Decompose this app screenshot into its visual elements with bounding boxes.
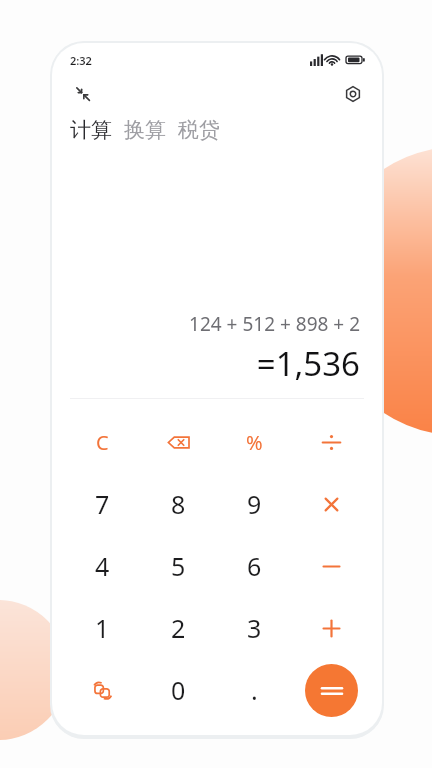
button[interactable]: 7 bbox=[64, 473, 140, 535]
button[interactable]: 计算 bbox=[70, 117, 118, 143]
staticText: 2:32 bbox=[70, 53, 92, 68]
staticText: =1,536 bbox=[70, 341, 360, 386]
staticText: 换算 bbox=[124, 117, 166, 143]
staticText: 8 bbox=[171, 487, 186, 521]
button[interactable]: Equals bbox=[305, 664, 358, 717]
button[interactable]: 5 bbox=[140, 535, 216, 597]
button[interactable]: 2 bbox=[140, 597, 216, 659]
button[interactable]: % bbox=[216, 411, 293, 473]
staticText: % bbox=[246, 429, 263, 456]
staticText: 0 bbox=[171, 673, 186, 707]
button[interactable]: 1 bbox=[64, 597, 140, 659]
button[interactable]: Collapse bbox=[70, 81, 96, 107]
button[interactable]: Multiply bbox=[293, 473, 370, 535]
button[interactable]: Minus bbox=[293, 535, 370, 597]
button[interactable]: Divide bbox=[293, 411, 370, 473]
button[interactable]: 换算 bbox=[118, 117, 172, 143]
button[interactable]: 6 bbox=[216, 535, 293, 597]
button[interactable]: 0 bbox=[140, 659, 216, 721]
button[interactable]: C bbox=[64, 411, 140, 473]
staticText: 计算 bbox=[70, 117, 112, 143]
staticText: 2 bbox=[171, 611, 186, 645]
staticText: 5 bbox=[171, 549, 186, 583]
button[interactable]: 8 bbox=[140, 473, 216, 535]
button[interactable]: 3 bbox=[216, 597, 293, 659]
button[interactable]: Plus bbox=[293, 597, 370, 659]
button[interactable]: 4 bbox=[64, 535, 140, 597]
button[interactable]: Settings bbox=[340, 81, 366, 107]
button[interactable]: 9 bbox=[216, 473, 293, 535]
staticText: 6 bbox=[247, 549, 262, 583]
staticText: 3 bbox=[247, 611, 262, 645]
staticText: 1 bbox=[95, 611, 110, 645]
staticText: 124 + 512 + 898 + 2 bbox=[70, 311, 360, 337]
staticText: . bbox=[251, 673, 258, 707]
staticText: 7 bbox=[95, 487, 110, 521]
button[interactable]: 税贷 bbox=[172, 117, 226, 143]
button[interactable]: Backspace bbox=[140, 411, 216, 473]
staticText: 4 bbox=[95, 549, 110, 583]
button[interactable]: . bbox=[216, 659, 293, 721]
button[interactable]: Convert bbox=[64, 659, 140, 721]
staticText: C bbox=[96, 429, 109, 456]
staticText: 9 bbox=[247, 487, 262, 521]
staticText: 税贷 bbox=[178, 117, 220, 143]
